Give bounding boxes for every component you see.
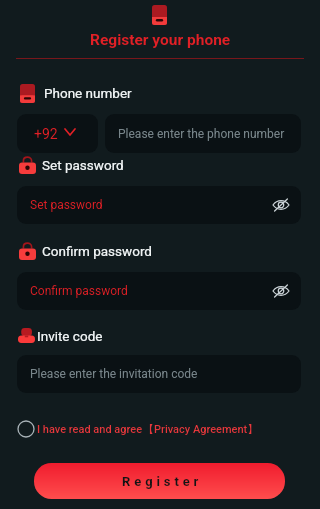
staticText: Set password [42, 157, 124, 173]
button[interactable]: I have read and agree [16, 417, 259, 441]
staticText: Phone number [44, 85, 132, 101]
staticText: 【Privacy Agreement】 [143, 422, 259, 436]
staticText: Please enter the phone number [118, 127, 285, 141]
button[interactable]: Please enter the invitation code [17, 355, 301, 393]
staticText: Confirm password [30, 284, 128, 298]
staticText: I have read and agree [37, 423, 143, 436]
staticText: Please enter the invitation code [30, 367, 198, 381]
button[interactable]: Confirm password [17, 272, 301, 310]
button[interactable]: Show password [269, 279, 293, 303]
staticText: Register your phone [90, 31, 231, 49]
staticText: Register [122, 474, 203, 489]
button[interactable]: Set password [17, 186, 301, 224]
staticText: Invite code [37, 328, 103, 344]
button[interactable]: Show password [269, 193, 293, 217]
staticText: +92 [34, 126, 58, 142]
button[interactable]: Register [34, 463, 285, 499]
button[interactable]: +92 [17, 114, 98, 153]
staticText: Confirm password [42, 243, 152, 259]
button[interactable]: Please enter the phone number [105, 114, 301, 153]
staticText: Set password [30, 198, 103, 212]
